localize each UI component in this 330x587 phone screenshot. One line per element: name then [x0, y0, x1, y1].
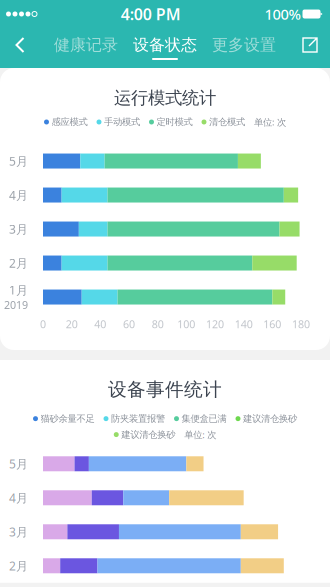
staticText: 140	[235, 317, 253, 331]
staticText: 4月	[9, 187, 28, 203]
staticText: 3月	[9, 221, 28, 237]
staticText: 设备事件统计	[108, 378, 222, 401]
button[interactable]: Share	[290, 25, 330, 65]
staticText: 2019	[4, 298, 28, 312]
staticText: 180	[292, 317, 310, 331]
staticText: 定时模式	[156, 116, 192, 128]
staticText: 设备状态	[133, 35, 197, 55]
staticText: 4月	[9, 490, 28, 506]
staticText: 3月	[9, 524, 28, 540]
staticText: 100%	[264, 4, 300, 24]
staticText: 80	[152, 317, 164, 331]
staticText: 40	[94, 317, 106, 331]
staticText: 建议清仓换砂	[121, 429, 175, 440]
staticText: 2月	[9, 558, 28, 574]
staticText: 20	[66, 317, 78, 331]
staticText: 60	[123, 317, 135, 331]
staticText: 5月	[9, 456, 28, 472]
button[interactable]: 设备状态	[132, 25, 198, 65]
staticText: 单位: 次	[184, 428, 216, 441]
staticText: 手动模式	[104, 116, 140, 128]
staticText: 100	[177, 317, 195, 331]
staticText: 0	[40, 317, 46, 331]
staticText: 感应模式	[51, 116, 87, 128]
staticText: 防夹装置报警	[111, 413, 165, 424]
staticText: 运行模式统计	[114, 87, 216, 109]
staticText: 1月	[9, 282, 28, 298]
staticText: 160	[263, 317, 281, 331]
staticText: 4:00 PM	[121, 3, 181, 25]
staticText: 猫砂余量不足	[40, 413, 94, 424]
staticText: 2月	[9, 255, 28, 271]
staticText: 集便盒已满	[181, 413, 226, 424]
staticText: 建议清仓换砂	[243, 413, 297, 424]
staticText: 单位: 次	[254, 116, 286, 128]
staticText: 健康记录	[54, 35, 118, 55]
button[interactable]: Back	[0, 25, 40, 65]
staticText: 更多设置	[212, 35, 276, 55]
button[interactable]: 更多设置	[211, 25, 277, 65]
staticText: 120	[206, 317, 224, 331]
staticText: 清仓模式	[209, 116, 245, 128]
staticText: 5月	[9, 153, 28, 169]
button[interactable]: 健康记录	[53, 25, 119, 65]
